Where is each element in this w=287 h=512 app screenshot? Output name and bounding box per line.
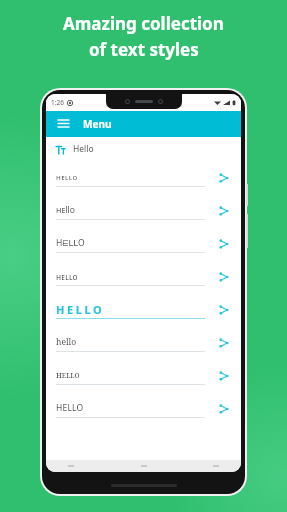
staticText: HELLO: [56, 302, 105, 317]
button[interactable]: HELLO: [46, 293, 241, 326]
button[interactable]: HᗴᒪᒪO: [46, 227, 241, 260]
staticText: Amazing collection: [63, 12, 224, 35]
button[interactable]: hello: [46, 326, 241, 359]
staticText: ʜᴇʟʟᴏ: [56, 369, 80, 381]
staticText: HELLO: [56, 402, 84, 414]
staticText: Menu: [83, 117, 112, 131]
button[interactable]: ʜᴇʟʟᴏ: [46, 359, 241, 392]
staticText: ʜᴇllo: [56, 204, 75, 216]
button[interactable]: ʜᴇllo: [46, 194, 241, 227]
button[interactable]: Share: [215, 301, 233, 319]
button[interactable]: Share: [215, 334, 233, 352]
button[interactable]: Share: [215, 367, 233, 385]
button[interactable]: Share: [215, 268, 233, 286]
staticText: ʜᴇʟʟᴏ: [56, 271, 78, 282]
staticText: HᗴᒪᒪO: [56, 237, 85, 249]
button[interactable]: Share: [215, 169, 233, 187]
button[interactable]: Hello: [46, 137, 241, 161]
staticText: ʜᴇʟʟᴏ: [56, 172, 78, 182]
button[interactable]: ʜᴇʟʟᴏ: [46, 161, 241, 194]
staticText: Hello: [73, 143, 94, 155]
button[interactable]: HELLO: [46, 392, 241, 425]
button[interactable]: ʜᴇʟʟᴏ: [46, 260, 241, 293]
button[interactable]: Share: [215, 235, 233, 253]
button[interactable]: Share: [215, 202, 233, 220]
button[interactable]: Share: [215, 400, 233, 418]
button[interactable]: Open navigation menu: [55, 116, 71, 132]
staticText: 1:26: [51, 98, 64, 107]
staticText: hello: [56, 336, 77, 348]
staticText: of text styles: [89, 38, 199, 61]
